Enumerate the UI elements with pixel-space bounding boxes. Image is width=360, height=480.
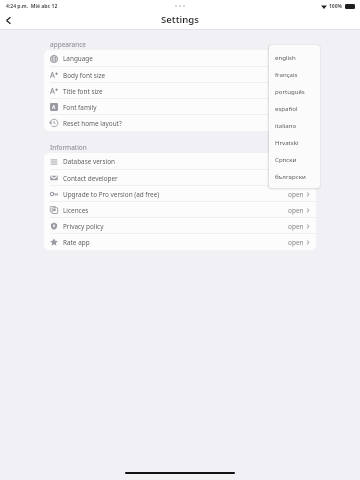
staticText: italiano — [275, 121, 297, 129]
button[interactable]: Title font size — [44, 83, 316, 99]
staticText: español — [275, 104, 298, 112]
staticText: Rate app — [63, 238, 90, 247]
button[interactable]: español — [269, 99, 320, 116]
button[interactable]: Privacy policy — [44, 218, 316, 234]
button[interactable]: Rate app — [44, 234, 316, 250]
button[interactable]: Contact developer — [44, 170, 316, 186]
staticText: Upgrade to Pro version (ad free) — [63, 190, 160, 199]
button[interactable]: Reset home layout? — [44, 115, 316, 131]
button[interactable]: Back — [1, 13, 16, 28]
button[interactable]: Hrvatski — [269, 133, 320, 150]
button[interactable]: Body font size — [44, 67, 316, 83]
button[interactable]: português — [269, 82, 320, 99]
staticText: 4:24 p.m. Mié abr. 12 — [6, 3, 58, 10]
button[interactable]: Српски — [269, 150, 320, 167]
staticText: български — [275, 172, 306, 180]
staticText: português — [275, 87, 305, 95]
button[interactable]: Licences — [44, 202, 316, 218]
staticText: français — [275, 70, 298, 78]
staticText: open — [288, 238, 304, 247]
button[interactable]: italiano — [269, 116, 320, 133]
button[interactable]: A — [44, 99, 316, 115]
staticText: open — [288, 190, 304, 199]
button[interactable]: Upgrade to Pro version (ad free) — [44, 186, 316, 202]
staticText: Licences — [63, 206, 89, 215]
staticText: Privacy policy — [63, 222, 104, 231]
staticText: Contact developer — [63, 174, 118, 183]
staticText: Settings — [161, 13, 199, 26]
button[interactable]: english — [269, 49, 320, 65]
button[interactable]: français — [269, 65, 320, 82]
staticText: Body font size — [63, 71, 106, 80]
button[interactable]: български — [269, 167, 320, 184]
staticText: A — [52, 104, 56, 111]
staticText: Language — [63, 54, 93, 63]
staticText: appearance — [50, 40, 86, 49]
staticText: english — [275, 53, 296, 61]
staticText: Српски — [275, 155, 297, 163]
button[interactable]: Database version — [44, 153, 316, 170]
staticText: Database version — [63, 157, 116, 166]
staticText: Title font size — [63, 87, 103, 96]
staticText: Font family — [63, 103, 97, 112]
staticText: Hrvatski — [275, 138, 299, 146]
staticText: 100% — [329, 3, 343, 10]
staticText: open — [288, 222, 304, 231]
staticText: Reset home layout? — [63, 119, 122, 128]
staticText: open — [288, 206, 304, 215]
staticText: Information — [50, 143, 87, 152]
button[interactable]: Language — [44, 50, 316, 67]
